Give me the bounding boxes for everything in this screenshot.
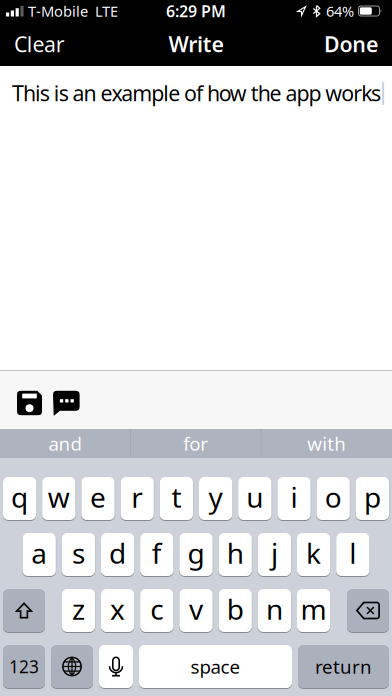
staticText: a (31, 534, 47, 572)
staticText: return (315, 654, 372, 679)
button[interactable]: k (297, 533, 330, 576)
staticText: 6:29 PM (166, 0, 226, 22)
staticText: d (109, 534, 126, 572)
staticText: b (227, 590, 244, 628)
button[interactable]: g (179, 533, 213, 576)
staticText: o (325, 478, 342, 516)
button[interactable]: p (356, 477, 389, 520)
staticText: with (307, 431, 346, 456)
button[interactable]: for (131, 429, 261, 458)
staticText: Done (324, 30, 378, 58)
staticText: space (190, 654, 240, 679)
staticText: n (266, 590, 283, 628)
button[interactable]: 123 (3, 645, 45, 688)
button[interactable]: Messages (53, 391, 80, 416)
staticText: for (183, 431, 208, 456)
staticText: i (290, 478, 297, 516)
button[interactable]: l (336, 533, 369, 576)
staticText: f (152, 534, 162, 572)
staticText: m (301, 590, 327, 628)
button[interactable]: Clear (14, 30, 65, 58)
staticText: T-Mobile (28, 1, 88, 21)
button[interactable]: f (140, 533, 173, 576)
button[interactable]: u (238, 477, 271, 520)
button[interactable]: a (23, 533, 56, 576)
staticText: s (72, 534, 85, 572)
staticText: l (349, 534, 356, 572)
button[interactable]: h (219, 533, 252, 576)
staticText: j (271, 534, 278, 572)
staticText: q (11, 478, 28, 516)
button[interactable]: Save (17, 391, 42, 416)
button[interactable]: b (219, 589, 252, 632)
button[interactable]: r (121, 477, 154, 520)
button[interactable]: c (140, 589, 173, 632)
button[interactable]: w (42, 477, 75, 520)
button[interactable]: n (258, 589, 291, 632)
staticText: Clear (14, 30, 65, 58)
button[interactable]: Next keyboard (51, 645, 93, 688)
button[interactable]: e (81, 477, 115, 520)
staticText: and (49, 431, 82, 456)
button[interactable]: j (258, 533, 291, 576)
staticText: c (150, 590, 163, 628)
staticText: z (72, 590, 85, 628)
button[interactable]: y (199, 477, 232, 520)
button[interactable]: o (317, 477, 350, 520)
button[interactable]: return (298, 645, 389, 688)
button[interactable]: s (62, 533, 95, 576)
staticText: 123 (9, 655, 39, 678)
button[interactable]: x (101, 589, 134, 632)
staticText: This is an example of how the app works (12, 79, 381, 107)
staticText: g (187, 534, 204, 572)
button[interactable]: Shift (3, 589, 45, 632)
staticText: y (209, 478, 223, 516)
staticText: e (90, 478, 106, 516)
button[interactable]: d (101, 533, 134, 576)
button[interactable]: Done (324, 30, 378, 58)
button[interactable]: and (0, 429, 130, 458)
button[interactable]: m (297, 589, 330, 632)
staticText: x (110, 590, 125, 628)
button[interactable]: i (277, 477, 311, 520)
staticText: u (246, 478, 263, 516)
button[interactable]: v (179, 589, 213, 632)
button[interactable]: t (160, 477, 193, 520)
staticText: v (189, 590, 203, 628)
button[interactable]: with (261, 429, 392, 458)
staticText: w (48, 478, 70, 516)
button[interactable]: q (3, 477, 36, 520)
button[interactable]: Dictate (99, 645, 133, 688)
staticText: p (364, 478, 381, 516)
staticText: LTE (95, 1, 118, 21)
button[interactable]: space (139, 645, 292, 688)
staticText: r (131, 478, 143, 516)
staticText: k (306, 534, 321, 572)
staticText: t (171, 478, 181, 516)
staticText: Write (169, 30, 223, 58)
staticText: h (227, 534, 244, 572)
button[interactable]: z (62, 589, 95, 632)
staticText: 64% (326, 1, 354, 21)
button[interactable]: Delete (347, 589, 389, 632)
